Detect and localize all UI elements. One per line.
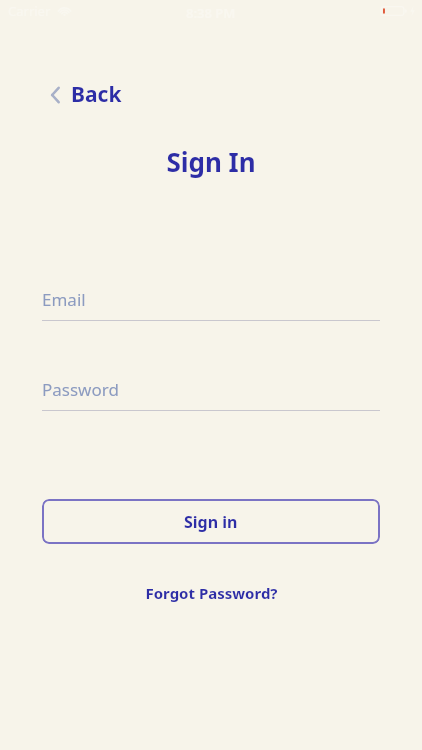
button[interactable]: Sign in <box>42 499 380 544</box>
staticText: Forgot Password? <box>145 583 278 603</box>
staticText: Back <box>71 80 122 109</box>
staticText: Password <box>42 378 119 401</box>
staticText: Sign In <box>166 144 256 179</box>
button[interactable]: Password <box>42 374 380 416</box>
staticText: Email <box>42 288 86 311</box>
button[interactable]: Email <box>42 284 380 326</box>
staticText: Sign in <box>184 511 238 533</box>
button[interactable]: Back <box>44 76 128 113</box>
button[interactable]: Forgot Password? <box>135 578 288 608</box>
